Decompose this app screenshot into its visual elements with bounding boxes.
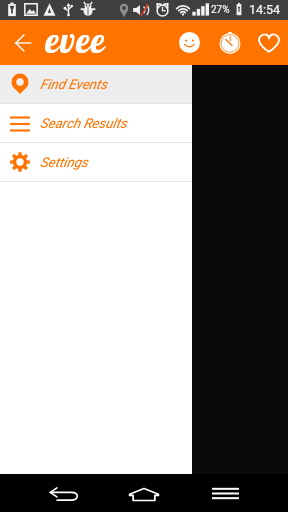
staticText: 14:54	[249, 2, 281, 17]
staticText: 27%	[211, 4, 230, 16]
button[interactable]: Find Events	[0, 65, 192, 103]
button[interactable]: Favorites	[250, 20, 288, 65]
staticText: Find Events	[40, 76, 108, 92]
button[interactable]: Back	[0, 20, 45, 65]
staticText: Search Results	[40, 115, 127, 131]
button[interactable]: Recent apps	[193, 474, 257, 512]
button[interactable]: Search Results	[0, 104, 192, 142]
button[interactable]: Home	[112, 474, 176, 512]
button[interactable]: Settings	[0, 143, 192, 181]
button[interactable]: Recent events	[209, 20, 250, 65]
button[interactable]: Smiley	[170, 20, 209, 65]
button[interactable]: Back	[31, 474, 95, 512]
staticText: Settings	[40, 154, 88, 170]
staticText: evee	[45, 18, 106, 62]
